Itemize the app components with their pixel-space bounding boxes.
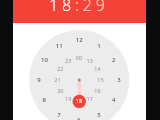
button[interactable]: Clock face [13,0,146,120]
staticText: 18 [49,0,75,16]
button[interactable]: 18 [13,0,146,23]
staticText: :29 [75,0,109,16]
